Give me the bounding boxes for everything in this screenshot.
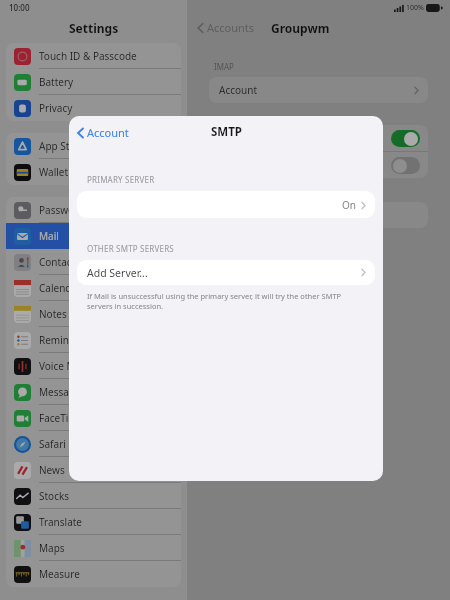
staticText: PRIMARY SERVER (87, 174, 155, 185)
button[interactable]: Notes (6, 301, 181, 327)
staticText: Stocks (39, 489, 70, 503)
staticText: App Store (39, 139, 86, 153)
staticText: Account (219, 83, 258, 97)
staticText: Privacy (39, 101, 73, 115)
button[interactable]: Battery (6, 69, 181, 95)
button[interactable]: Maps (6, 535, 181, 561)
button[interactable]: Measure (6, 561, 181, 587)
button[interactable]: News (6, 457, 181, 483)
staticText: Translate (39, 515, 83, 529)
button[interactable]: Translate (6, 509, 181, 535)
button[interactable]: Setting row (209, 202, 428, 228)
button[interactable]: Stocks (6, 483, 181, 509)
button[interactable]: Account (209, 77, 428, 103)
staticText: SMTP (211, 124, 242, 140)
button[interactable]: App Store (6, 133, 181, 159)
button[interactable]: Reminders (6, 327, 181, 353)
staticText: Contacts (39, 255, 80, 269)
button[interactable]: Safari (6, 431, 181, 457)
staticText: 100% (406, 3, 424, 13)
button[interactable]: Primary server On (77, 191, 375, 218)
staticText: Battery (39, 75, 74, 89)
staticText: News (39, 463, 65, 477)
staticText: Accounts (207, 20, 255, 35)
button[interactable]: Add Server... (77, 260, 375, 285)
staticText: Notes (39, 307, 67, 321)
staticText: Messages (39, 385, 86, 399)
button[interactable]: FaceTime (6, 405, 181, 431)
staticText: IMAP (214, 61, 234, 72)
staticText: Account (87, 125, 129, 140)
button[interactable]: Touch ID & Passcode (6, 43, 181, 69)
button[interactable]: Messages (6, 379, 181, 405)
staticText: Safari (39, 437, 66, 451)
button[interactable]: Account (77, 125, 129, 140)
staticText: Reminders (39, 333, 90, 347)
staticText: Calendar (39, 281, 82, 295)
staticText: OTHER SMTP SERVERS (87, 243, 174, 254)
staticText: Passwords (39, 203, 90, 217)
staticText: Settings (69, 20, 119, 36)
button[interactable]: Voice Memos (6, 353, 181, 379)
staticText: 10:00 (9, 2, 30, 13)
button[interactable]: Wallet (6, 159, 181, 185)
button[interactable]: Privacy (6, 95, 181, 121)
staticText: If Mail is unsuccessful using the primar… (87, 291, 365, 311)
button[interactable]: Mail (6, 223, 181, 249)
button[interactable]: Toggle off (209, 152, 428, 178)
button[interactable]: Passwords (6, 197, 181, 223)
staticText: Groupwm (271, 20, 330, 36)
staticText: Maps (39, 541, 65, 555)
button[interactable]: Toggle on (209, 125, 428, 151)
staticText: On (342, 198, 356, 212)
staticText: Touch ID & Passcode (39, 49, 137, 63)
staticText: Mail (39, 229, 59, 243)
button[interactable]: Accounts (197, 20, 255, 35)
staticText: Wallet (39, 165, 69, 179)
button[interactable]: Contacts (6, 249, 181, 275)
staticText: Voice Memos (39, 359, 102, 373)
staticText: Add Server... (87, 266, 148, 280)
staticText: FaceTime (39, 411, 84, 425)
staticText: Measure (39, 567, 80, 581)
button[interactable]: Calendar (6, 275, 181, 301)
